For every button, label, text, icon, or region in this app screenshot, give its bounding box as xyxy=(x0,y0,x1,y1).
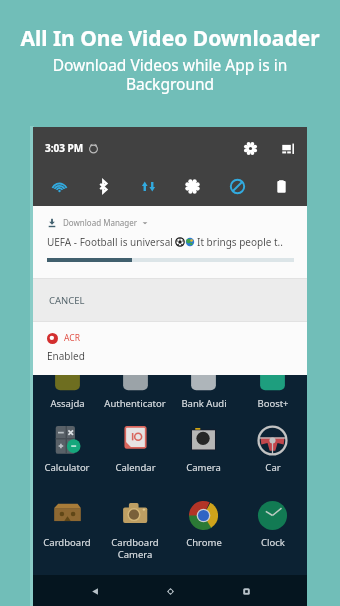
button[interactable]: Assajda xyxy=(33,361,101,410)
button[interactable]: Settings xyxy=(241,139,259,157)
staticText: It brings people t.. xyxy=(197,235,283,249)
staticText: Clock xyxy=(261,536,285,549)
button[interactable]: Bluetooth xyxy=(91,174,115,198)
staticText: Car xyxy=(265,461,281,474)
button[interactable]: Camera xyxy=(169,425,238,474)
button[interactable]: Back xyxy=(81,577,109,605)
button[interactable]: Home xyxy=(156,577,184,605)
staticText: 3:03 PM xyxy=(45,141,84,155)
staticText: Camera xyxy=(186,461,221,474)
button[interactable]: Boost+ xyxy=(238,361,307,410)
button[interactable]: Authenticator xyxy=(101,361,169,410)
staticText: Bank Audi xyxy=(181,397,227,410)
staticText: Assajda xyxy=(50,397,85,410)
button[interactable]: Wi-Fi xyxy=(47,174,71,198)
staticText: Cardboard xyxy=(43,536,91,549)
staticText: UEFA - Football is universal xyxy=(47,235,173,249)
button[interactable]: Bank Audi xyxy=(169,361,238,410)
staticText: ACR xyxy=(64,332,80,344)
button[interactable]: Download Manager xyxy=(33,206,307,278)
staticText: Chrome xyxy=(186,536,222,549)
button[interactable]: Calendar xyxy=(101,425,169,474)
button[interactable]: CANCEL xyxy=(33,279,307,321)
staticText: Download Videos while App is in Backgrou… xyxy=(0,54,340,94)
button[interactable]: Chrome xyxy=(169,500,238,549)
button[interactable]: Car xyxy=(238,425,307,474)
button[interactable]: Recent apps xyxy=(232,577,260,605)
staticText: Calendar xyxy=(115,461,156,474)
staticText: Download Manager xyxy=(63,217,138,228)
button[interactable]: Battery xyxy=(269,174,293,198)
staticText: CANCEL xyxy=(49,294,85,307)
staticText: Authenticator xyxy=(104,397,166,410)
staticText: All In One Video Downloader xyxy=(0,24,340,53)
button[interactable]: Brightness xyxy=(180,174,204,198)
button[interactable]: Mobile data xyxy=(136,174,160,198)
button[interactable]: Cardboard xyxy=(33,500,101,549)
staticText: Enabled xyxy=(47,349,85,363)
button[interactable]: Clock xyxy=(238,500,307,549)
button[interactable]: Cardboard Camera xyxy=(101,500,169,560)
button[interactable]: Calculator xyxy=(33,425,101,474)
staticText: Cardboard Camera xyxy=(111,536,159,560)
button[interactable]: Do not disturb xyxy=(225,174,249,198)
staticText: Calculator xyxy=(44,461,90,474)
staticText: Boost+ xyxy=(257,397,289,410)
button[interactable]: ACR xyxy=(33,322,307,375)
